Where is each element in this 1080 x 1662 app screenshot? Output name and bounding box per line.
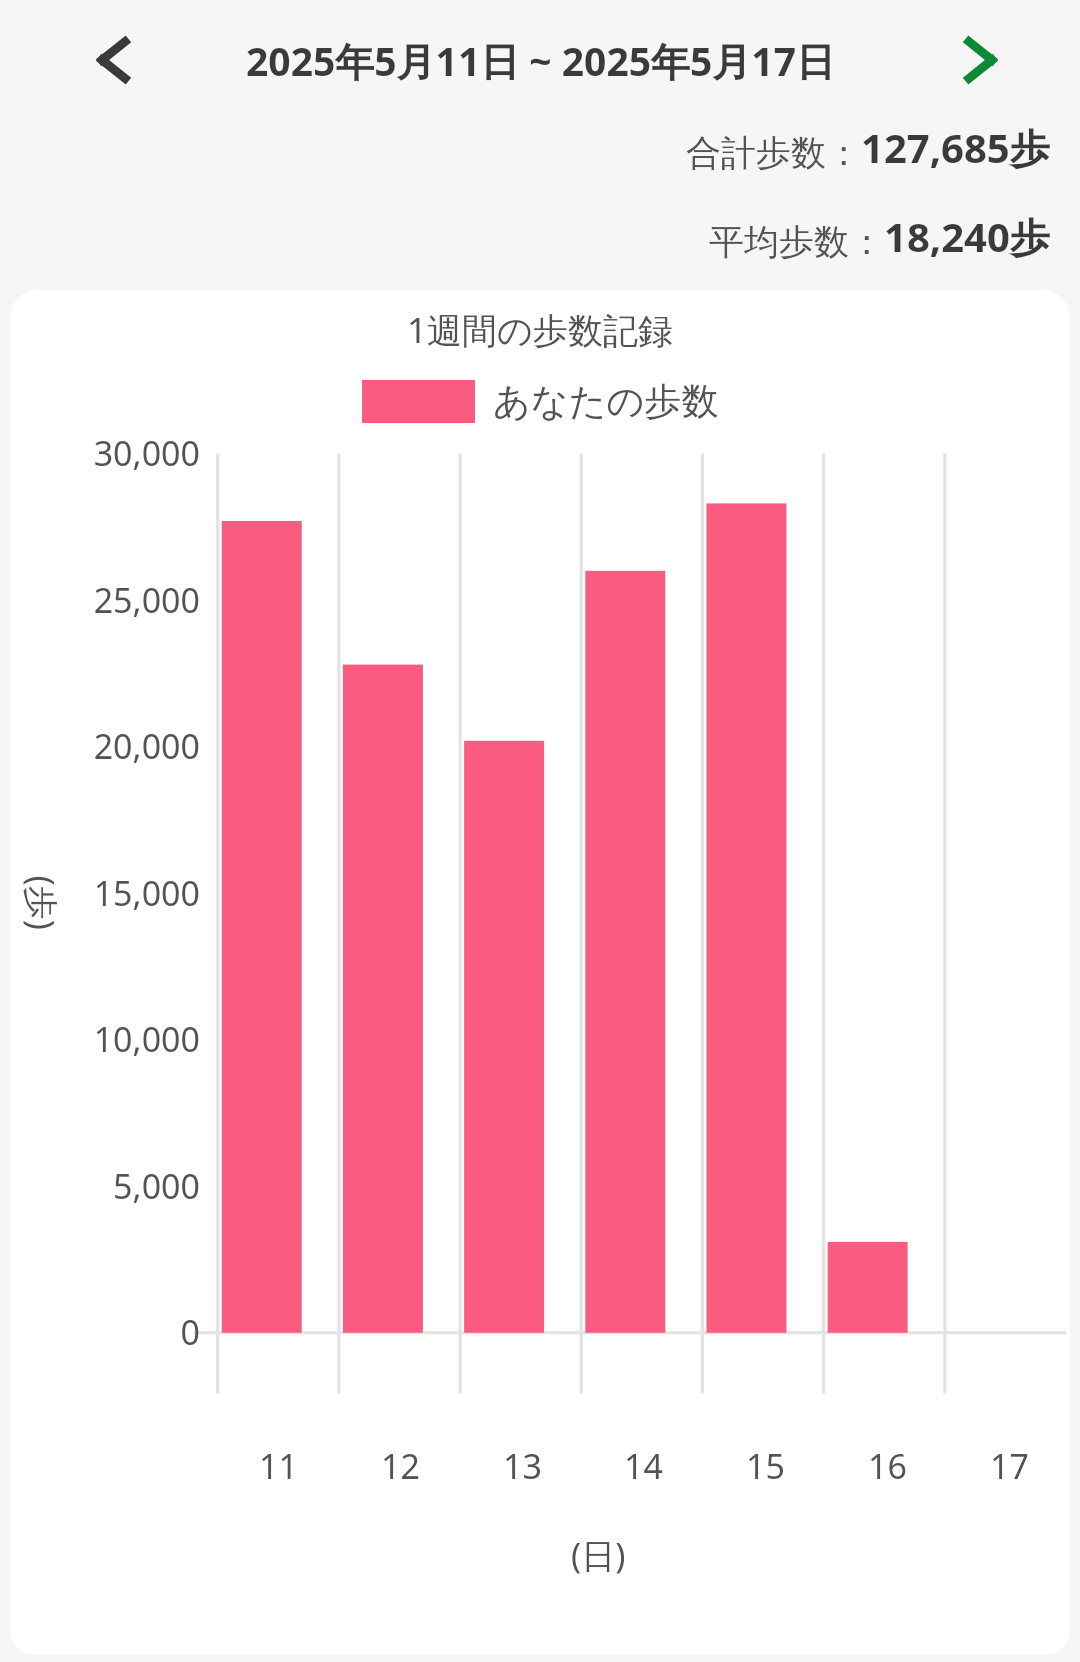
button[interactable]: Next week xyxy=(942,22,1018,98)
staticText: 2025年5月11日 ~ 2025年5月17日 xyxy=(246,34,835,87)
staticText: 14 xyxy=(624,1443,663,1489)
staticText: 11 xyxy=(259,1443,298,1489)
staticText: 17 xyxy=(990,1443,1029,1489)
staticText: 5,000 xyxy=(113,1163,200,1209)
staticText: 合計歩数： xyxy=(686,131,861,175)
staticText: 平均歩数： xyxy=(709,220,884,264)
staticText: 15,000 xyxy=(93,870,200,916)
staticText: 30,000 xyxy=(93,430,200,476)
staticText: 10,000 xyxy=(93,1016,200,1062)
staticText: 18,240歩 xyxy=(884,209,1050,264)
staticText: 12 xyxy=(381,1443,420,1489)
staticText: 25,000 xyxy=(93,577,200,623)
staticText: 20,000 xyxy=(93,723,200,769)
staticText: (日) xyxy=(571,1532,626,1578)
staticText: 127,685歩 xyxy=(861,120,1050,175)
button[interactable]: Previous week xyxy=(76,22,152,98)
staticText: 1週間の歩数記録 xyxy=(407,306,673,354)
staticText: 13 xyxy=(503,1443,542,1489)
staticText: 16 xyxy=(868,1443,907,1489)
staticText: 0 xyxy=(180,1309,200,1355)
staticText: あなたの歩数 xyxy=(493,378,719,425)
staticText: (歩) xyxy=(18,875,64,930)
staticText: 15 xyxy=(746,1443,785,1489)
